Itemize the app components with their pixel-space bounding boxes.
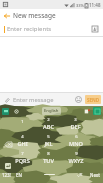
staticText: 6 (75, 134, 78, 140)
button[interactable]: 1 (9, 116, 35, 132)
staticText: New message (13, 11, 56, 20)
staticText: English (44, 108, 59, 114)
staticText: Enter recipients (7, 25, 52, 33)
button[interactable]: .,?! (73, 166, 86, 183)
button[interactable]: Sticker (84, 108, 91, 115)
button[interactable]: Backspace (2, 138, 14, 151)
staticText: 7 (21, 151, 24, 157)
button[interactable]: Next (86, 166, 103, 183)
button[interactable]: Keyboard theme (2, 108, 9, 115)
staticText: 2 (47, 117, 50, 123)
staticText: .,?! (77, 172, 83, 178)
button[interactable]: 7 (9, 149, 35, 166)
staticText: MNO (69, 140, 83, 148)
staticText: 123! (2, 172, 11, 178)
staticText: GHI (17, 140, 28, 148)
button[interactable]: Settings (13, 108, 19, 114)
button[interactable]: Space (25, 166, 73, 183)
button[interactable]: Back (0, 9, 13, 22)
staticText: 33% (76, 3, 84, 8)
staticText: 4 (21, 134, 24, 140)
button[interactable]: 2 (35, 116, 62, 132)
staticText: 11:48 (89, 2, 101, 8)
button[interactable]: 3 (62, 116, 89, 132)
button[interactable]: Attach (2, 95, 12, 105)
staticText: 3 (74, 117, 77, 123)
staticText: JKL (44, 140, 53, 148)
button[interactable]: Enter (2, 159, 14, 172)
button[interactable]: 9 (62, 149, 89, 166)
staticText: DEF (70, 123, 81, 131)
staticText: Next (90, 172, 100, 178)
button[interactable]: English (44, 108, 59, 114)
staticText: TUV (43, 157, 54, 165)
button[interactable]: More (93, 107, 101, 115)
button[interactable]: 4 (9, 132, 35, 149)
staticText: ABC (43, 123, 54, 131)
button[interactable]: Enter recipients (0, 22, 103, 36)
staticText: WXYZ (68, 157, 84, 165)
button[interactable]: 5 (35, 132, 62, 149)
staticText: 5 (47, 134, 50, 140)
staticText: Enter message (13, 96, 54, 104)
staticText: 1 (21, 119, 24, 125)
staticText: EN (16, 172, 22, 178)
button[interactable]: SEND (85, 95, 101, 104)
staticText: 8 (47, 151, 50, 157)
button[interactable]: Add contact (89, 23, 101, 35)
button[interactable]: EN (13, 166, 25, 183)
staticText: PQRS (15, 157, 30, 165)
button[interactable]: 8 (35, 149, 62, 166)
button[interactable]: 6 (62, 132, 89, 149)
button[interactable]: 123! (0, 166, 13, 183)
staticText: SEND (87, 97, 100, 103)
staticText: 9 (75, 151, 78, 157)
button[interactable]: Emoji (73, 94, 84, 105)
